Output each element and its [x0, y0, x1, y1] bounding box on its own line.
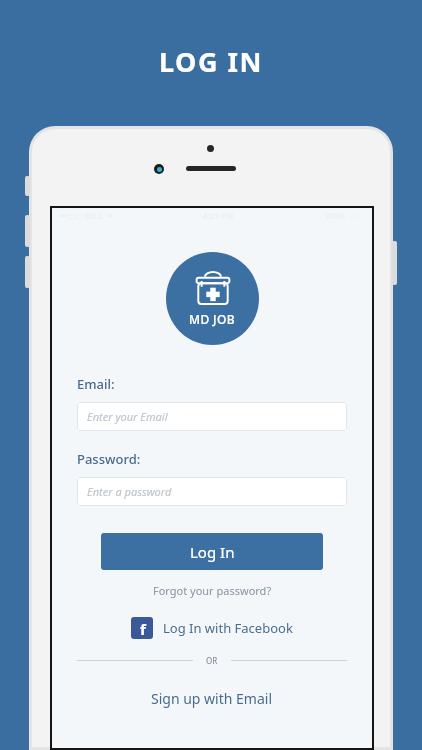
staticText: LOG IN	[159, 43, 263, 80]
staticText: Log In with Facebook	[163, 619, 293, 637]
button[interactable]: Enter your Email	[77, 402, 347, 431]
staticText: 100%	[324, 210, 345, 221]
staticText: Password:	[77, 450, 141, 468]
staticText: Log In	[190, 542, 235, 562]
button[interactable]: Enter a password	[77, 477, 347, 506]
staticText: Sign up with Email	[151, 689, 273, 708]
staticText: OR	[206, 655, 218, 666]
staticText: •••○○ BELL	[59, 210, 103, 221]
button[interactable]: Sign up with Email	[145, 683, 279, 714]
staticText: Enter your Email	[87, 409, 168, 424]
staticText: f	[140, 619, 146, 639]
staticText: Email:	[77, 375, 115, 393]
staticText: MD JOB	[189, 311, 236, 327]
staticText: 4:21 PM	[203, 210, 234, 221]
button[interactable]: f	[121, 613, 303, 643]
staticText: Forgot your password?	[153, 583, 272, 598]
button[interactable]: MD JOB logo	[166, 252, 259, 345]
button[interactable]: Forgot your password?	[148, 578, 277, 603]
staticText: Enter a password	[87, 484, 172, 499]
button[interactable]: Log In	[101, 533, 323, 570]
